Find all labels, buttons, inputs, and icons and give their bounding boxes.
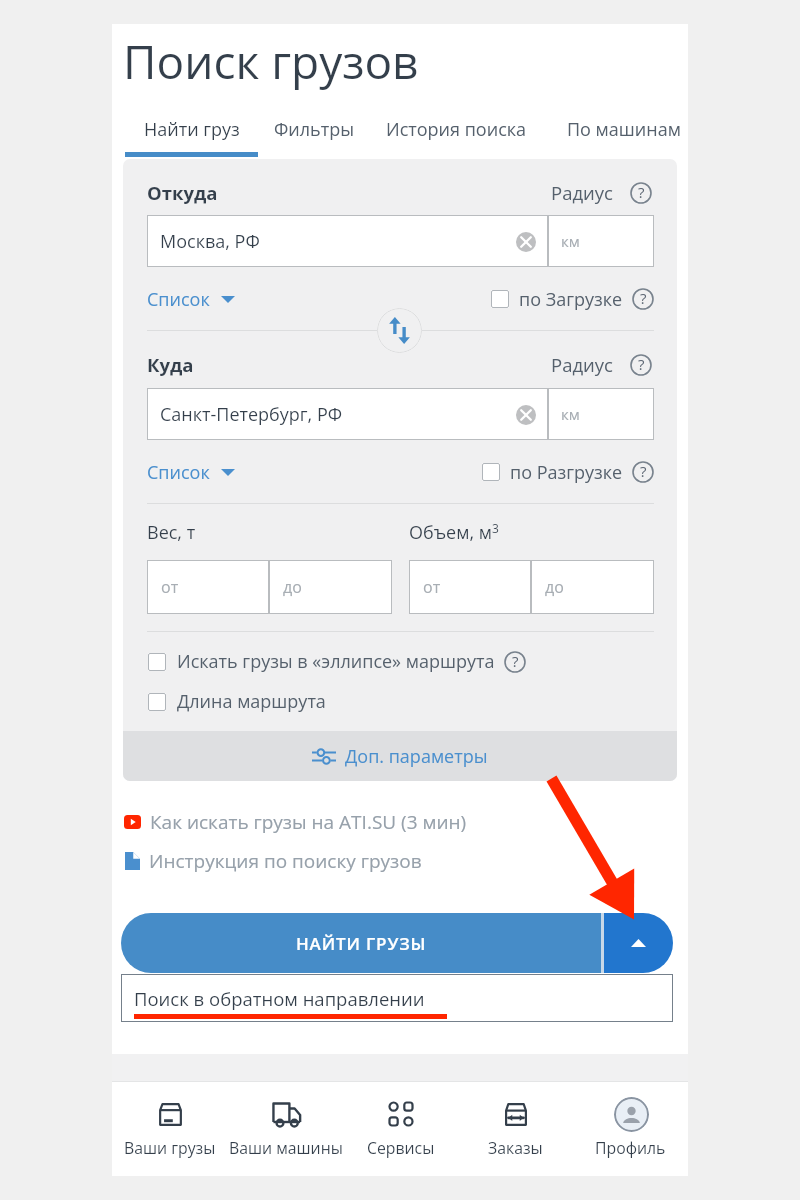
button[interactable]: Поиск в обратном направлении: [121, 974, 673, 1022]
staticText: Фильтры: [274, 117, 355, 142]
button[interactable]: Очистить: [516, 232, 536, 252]
button[interactable]: По машинам: [553, 106, 694, 157]
staticText: до: [283, 576, 302, 598]
button[interactable]: по Разгрузке: [482, 460, 623, 484]
button[interactable]: Очистить: [516, 405, 536, 425]
button[interactable]: Справка: [632, 288, 654, 310]
staticText: Профиль: [595, 1137, 666, 1159]
staticText: Объем, м3: [409, 520, 499, 545]
button[interactable]: Доп. параметры: [123, 731, 677, 781]
button[interactable]: Инструкция по поиску грузов: [125, 848, 422, 874]
staticText: Доп. параметры: [345, 744, 488, 769]
staticText: Ваши машины: [229, 1137, 343, 1159]
button[interactable]: км: [548, 388, 654, 440]
button[interactable]: по Загрузке: [491, 287, 623, 311]
button[interactable]: Санкт-Петербург, РФ: [147, 388, 548, 440]
staticText: Сервисы: [367, 1137, 435, 1159]
button[interactable]: Найти груз: [125, 106, 258, 157]
staticText: Длина маршрута: [177, 689, 326, 714]
button[interactable]: НАЙТИ ГРУЗЫ: [121, 913, 601, 973]
staticText: по Загрузке: [519, 287, 623, 311]
staticText: История поиска: [386, 117, 527, 142]
button[interactable]: История поиска: [377, 106, 535, 157]
staticText: Радиус: [551, 180, 613, 205]
button[interactable]: Ваши грузы: [112, 1096, 228, 1180]
button[interactable]: Как искать грузы на ATI.SU (3 мин): [124, 809, 467, 835]
button[interactable]: Справка: [630, 182, 652, 204]
button[interactable]: Москва, РФ: [147, 215, 548, 267]
staticText: Заказы: [488, 1137, 543, 1159]
button[interactable]: Справка: [630, 354, 652, 376]
staticText: ?: [640, 461, 647, 481]
button[interactable]: км: [548, 215, 654, 267]
button[interactable]: до: [269, 560, 392, 614]
staticText: Найти груз: [144, 117, 240, 142]
button[interactable]: Искать грузы в «эллипсе» маршрута: [148, 649, 495, 674]
button[interactable]: Фильтры: [259, 106, 370, 157]
staticText: Откуда: [147, 180, 218, 205]
button[interactable]: Справка: [504, 651, 526, 673]
staticText: По машинам: [567, 117, 681, 142]
staticText: Поиск грузов: [123, 30, 419, 93]
button[interactable]: Длина маршрута: [148, 689, 326, 714]
staticText: ?: [638, 182, 645, 202]
staticText: Список: [147, 460, 210, 484]
staticText: Москва, РФ: [160, 229, 260, 254]
staticText: ?: [512, 651, 519, 671]
staticText: НАЙТИ ГРУЗЫ: [296, 932, 427, 955]
button[interactable]: Заказы: [458, 1096, 573, 1180]
staticText: до: [545, 576, 564, 598]
staticText: Искать грузы в «эллипсе» маршрута: [177, 649, 495, 674]
staticText: Инструкция по поиску грузов: [149, 848, 422, 874]
staticText: по Разгрузке: [510, 460, 623, 484]
staticText: Как искать грузы на ATI.SU (3 мин): [150, 809, 467, 835]
button[interactable]: Список: [147, 460, 235, 484]
staticText: Вес, т: [147, 520, 196, 545]
button[interactable]: Список: [147, 287, 235, 311]
button[interactable]: Профиль: [573, 1096, 688, 1180]
staticText: Поиск в обратном направлении: [134, 986, 425, 1011]
staticText: Ваши грузы: [124, 1137, 216, 1159]
staticText: Куда: [147, 352, 194, 377]
button[interactable]: Справка: [632, 461, 654, 483]
staticText: км: [561, 404, 580, 424]
staticText: Список: [147, 287, 210, 311]
button[interactable]: Развернуть: [604, 913, 673, 973]
staticText: Радиус: [551, 352, 613, 377]
button[interactable]: до: [531, 560, 654, 614]
button[interactable]: Сервисы: [343, 1096, 458, 1180]
staticText: от: [423, 576, 441, 598]
staticText: Санкт-Петербург, РФ: [160, 402, 343, 427]
button[interactable]: от: [147, 560, 269, 614]
button[interactable]: Ваши машины: [228, 1096, 343, 1180]
staticText: км: [561, 231, 580, 251]
staticText: ?: [640, 288, 647, 308]
staticText: от: [161, 576, 179, 598]
button[interactable]: от: [409, 560, 531, 614]
staticText: ?: [638, 354, 645, 374]
button[interactable]: Поменять местами: [377, 308, 422, 353]
